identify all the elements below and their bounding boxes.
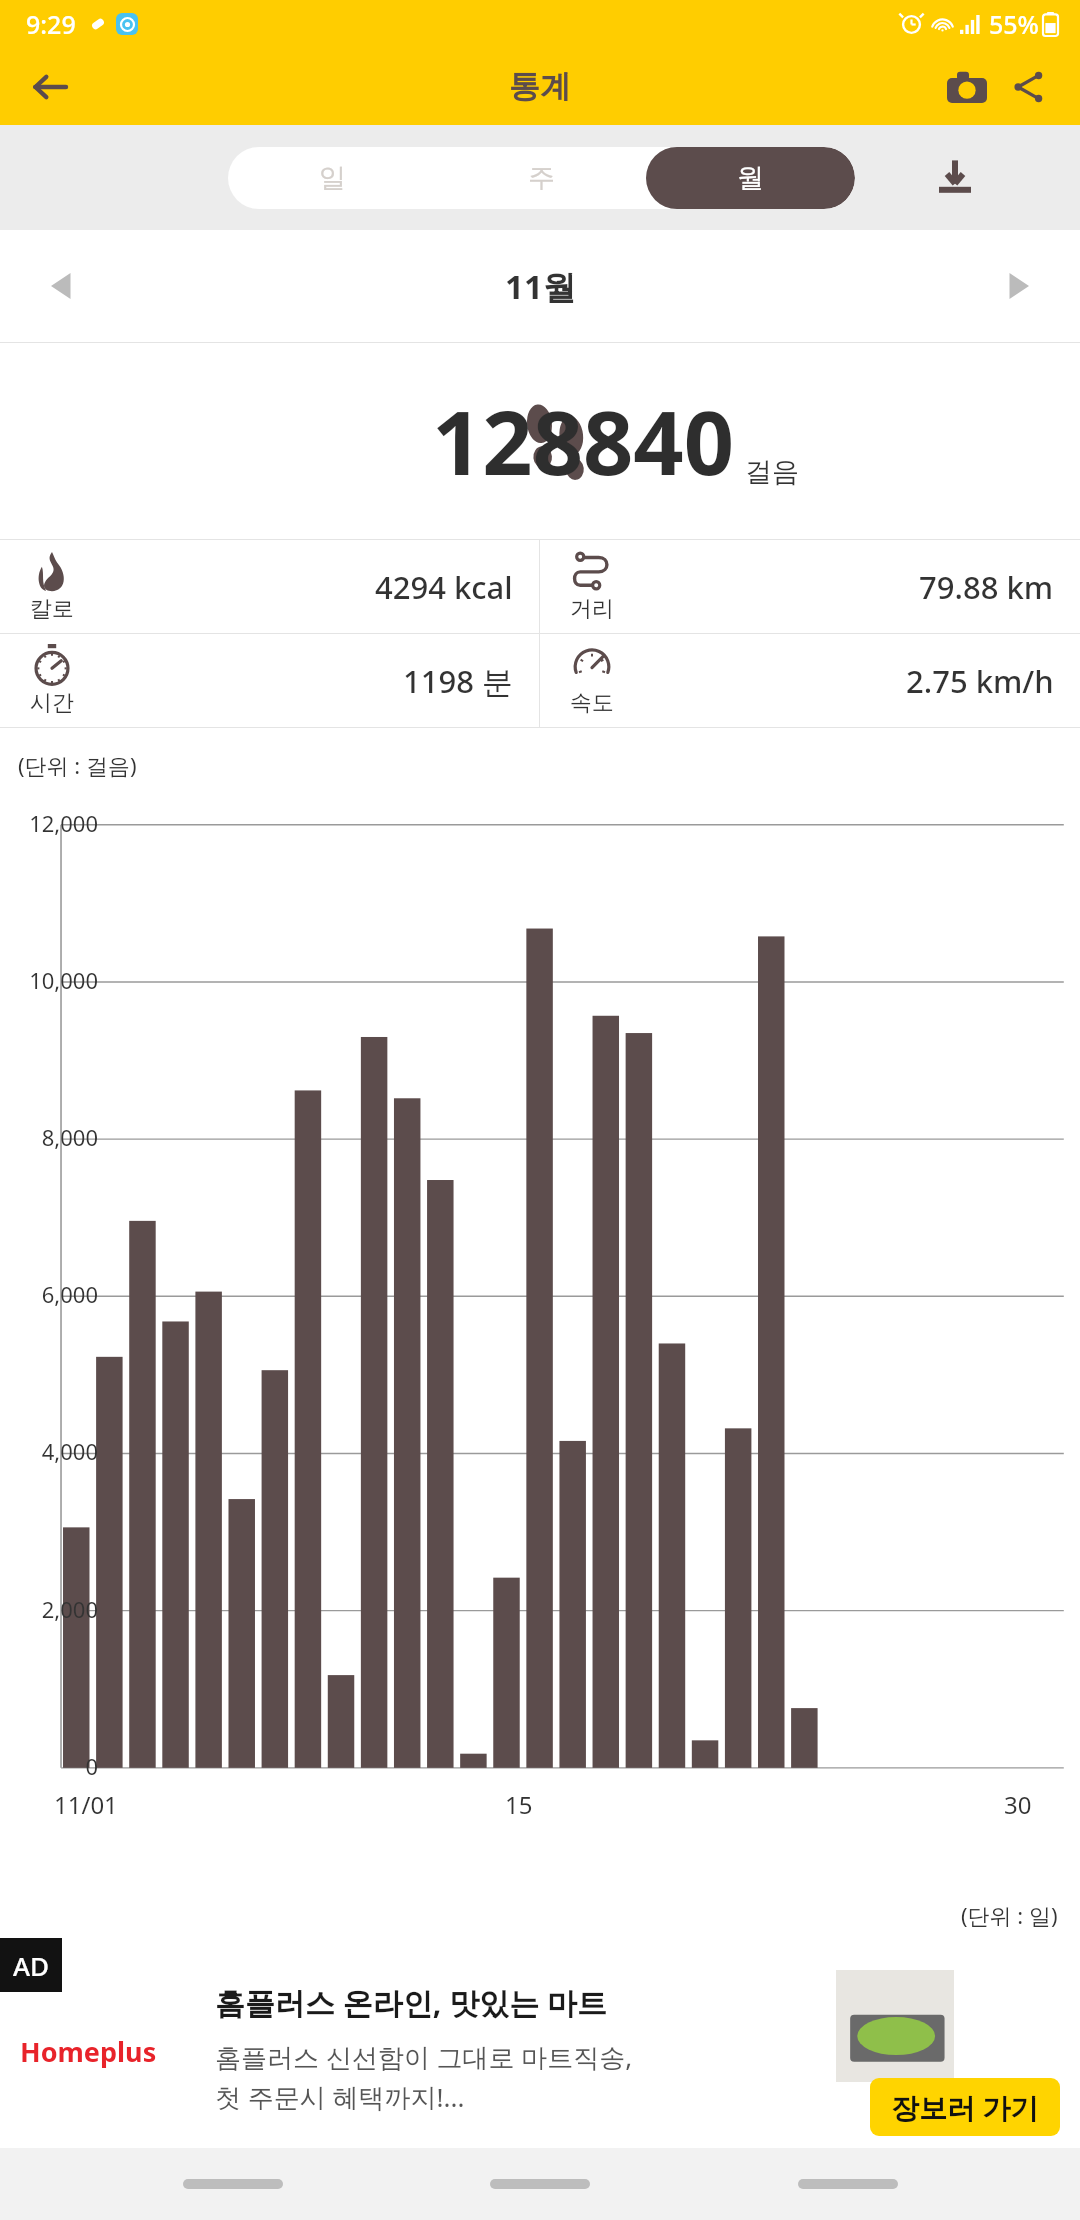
- staticText: 칼로: [30, 595, 74, 623]
- staticText: 시간: [30, 689, 74, 717]
- staticText: 1198 분: [403, 660, 513, 702]
- staticText: 55%: [989, 7, 1039, 41]
- staticText: 홈플러스 온라인, 맛있는 마트: [215, 1982, 607, 2023]
- button[interactable]: 거리: [540, 540, 1080, 633]
- staticText: 속도: [570, 689, 614, 717]
- button[interactable]: Share: [998, 56, 1060, 118]
- button[interactable]: 시간: [0, 634, 539, 727]
- button[interactable]: 장보러 가기: [870, 2078, 1060, 2136]
- staticText: 첫 주문시 혜택까지!...: [215, 2079, 465, 2115]
- staticText: 11/01: [54, 1788, 118, 1821]
- button[interactable]: Next month: [982, 252, 1050, 320]
- staticText: 장보러 가기: [891, 2088, 1039, 2126]
- button[interactable]: Download: [920, 143, 990, 213]
- staticText: 4,000: [0, 1436, 98, 1466]
- staticText: 30: [1004, 1788, 1032, 1821]
- staticText: 주: [528, 161, 555, 195]
- staticText: 79.88 km: [919, 566, 1054, 608]
- staticText: 15: [505, 1788, 533, 1821]
- staticText: 2.75 km/h: [906, 660, 1054, 702]
- staticText: (단위 : 걸음): [18, 750, 137, 780]
- button[interactable]: 월: [646, 147, 855, 209]
- button[interactable]: 속도: [540, 634, 1080, 727]
- staticText: 일: [319, 161, 346, 195]
- staticText: 0: [0, 1751, 98, 1781]
- button[interactable]: 주: [437, 147, 646, 209]
- staticText: (단위 : 일): [961, 1900, 1058, 1930]
- button[interactable]: Back: [773, 2164, 923, 2204]
- staticText: 12,000: [0, 808, 98, 838]
- staticText: 11월: [505, 264, 576, 309]
- staticText: 걸음: [745, 455, 799, 489]
- button[interactable]: 칼로: [0, 540, 539, 633]
- staticText: 2,000: [0, 1594, 98, 1624]
- button[interactable]: Back: [18, 56, 80, 118]
- staticText: 월: [737, 161, 764, 195]
- staticText: 통계: [509, 67, 571, 106]
- staticText: 4294 kcal: [375, 566, 513, 608]
- staticText: 6,000: [0, 1279, 98, 1309]
- staticText: 거리: [570, 595, 614, 623]
- button[interactable]: Camera: [936, 56, 998, 118]
- staticText: 홈플러스 신선함이 그대로 마트직송,: [215, 2039, 633, 2075]
- staticText: 9:29: [26, 7, 76, 41]
- button[interactable]: 일: [228, 147, 437, 209]
- staticText: AD: [13, 1948, 50, 1983]
- button[interactable]: Home: [465, 2164, 615, 2204]
- staticText: 8,000: [0, 1122, 98, 1152]
- button[interactable]: Previous month: [30, 252, 98, 320]
- staticText: 128840: [432, 381, 735, 501]
- staticText: 10,000: [0, 965, 98, 995]
- staticText: Homeplus: [20, 2033, 157, 2070]
- button[interactable]: Recents: [158, 2164, 308, 2204]
